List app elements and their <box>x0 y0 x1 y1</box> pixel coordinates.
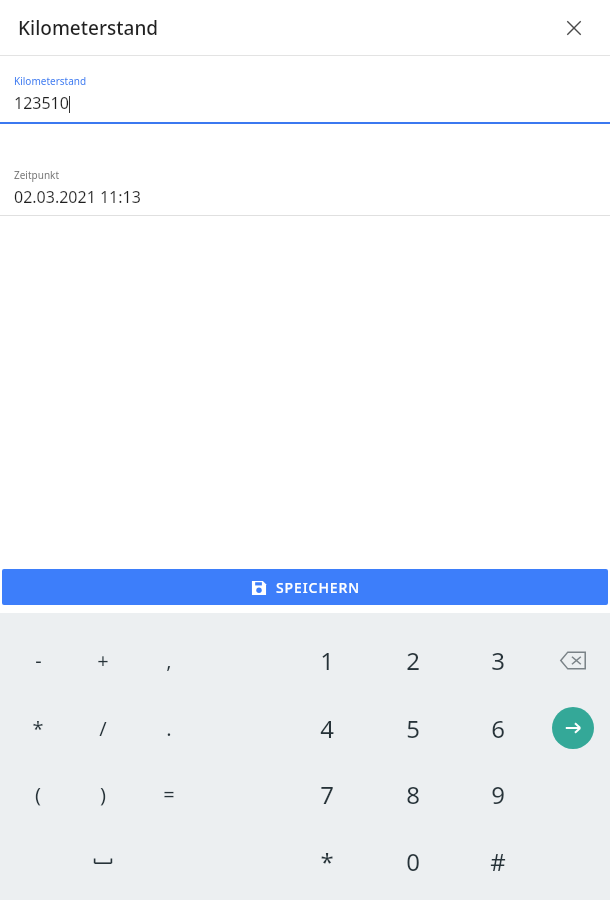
staticText: 02.03.2021 11:13 <box>14 186 141 208</box>
button[interactable]: . <box>136 703 202 753</box>
button[interactable]: - <box>5 635 71 685</box>
button[interactable]: 2 <box>380 635 446 685</box>
button[interactable]: ) <box>70 769 136 819</box>
button[interactable]: 0 <box>380 836 446 886</box>
button[interactable]: 1 <box>294 635 360 685</box>
staticText: - <box>35 647 42 674</box>
staticText: 0 <box>406 845 420 878</box>
staticText: 9 <box>491 778 505 811</box>
staticText: Zeitpunkt <box>14 168 60 182</box>
staticText: Kilometerstand <box>14 74 87 88</box>
staticText: 4 <box>320 712 334 745</box>
staticText: , <box>166 647 172 674</box>
button[interactable]: 8 <box>380 769 446 819</box>
button[interactable]: Zeitpunkt <box>0 168 610 215</box>
staticText: 8 <box>406 778 420 811</box>
button[interactable]: + <box>70 635 136 685</box>
button[interactable]: 4 <box>294 703 360 753</box>
staticText: 2 <box>406 644 420 677</box>
staticText: = <box>163 781 175 808</box>
staticText: / <box>99 715 107 742</box>
staticText: 3 <box>491 644 505 677</box>
staticText: ) <box>100 781 106 808</box>
button[interactable]: * <box>5 703 71 753</box>
button[interactable]: * <box>294 836 360 886</box>
button[interactable]: = <box>136 769 202 819</box>
button[interactable]: SPEICHERN <box>2 569 608 605</box>
button[interactable]: 9 <box>465 769 531 819</box>
staticText: SPEICHERN <box>276 578 360 597</box>
staticText: * <box>32 715 44 742</box>
button[interactable]: Kilometerstand <box>0 56 610 122</box>
button[interactable]: 3 <box>465 635 531 685</box>
staticText: . <box>166 715 172 742</box>
button[interactable]: 5 <box>380 703 446 753</box>
staticText: * <box>320 845 334 878</box>
staticText: ( <box>35 781 41 808</box>
staticText: 7 <box>320 778 334 811</box>
staticText: 5 <box>406 712 420 745</box>
button[interactable]: 7 <box>294 769 360 819</box>
button[interactable]: Eingabe <box>545 703 601 753</box>
button[interactable]: # <box>465 836 531 886</box>
button[interactable]: Löschen <box>545 635 601 685</box>
staticText: + <box>97 647 109 674</box>
staticText: 6 <box>491 712 505 745</box>
staticText: 123510 <box>14 92 69 114</box>
button[interactable]: Leerzeichen <box>70 836 136 886</box>
button[interactable]: , <box>136 635 202 685</box>
button[interactable]: / <box>70 703 136 753</box>
staticText: # <box>490 845 506 878</box>
button[interactable]: 6 <box>465 703 531 753</box>
staticText: Kilometerstand <box>18 15 159 41</box>
staticText: 1 <box>320 644 334 677</box>
button[interactable]: ( <box>5 769 71 819</box>
button[interactable]: Schließen <box>552 6 596 50</box>
